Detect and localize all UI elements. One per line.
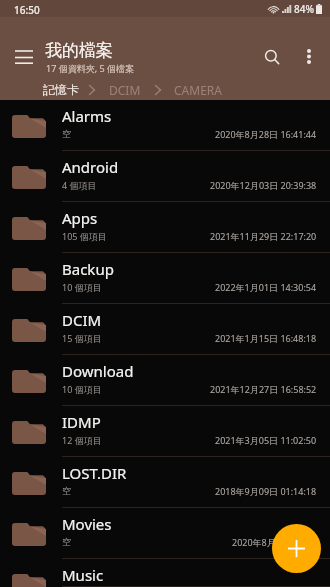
button[interactable]: Download bbox=[0, 355, 330, 406]
staticText: 4 個項目 bbox=[62, 179, 97, 191]
staticText: Music bbox=[62, 565, 104, 585]
button[interactable]: 記憶卡 bbox=[43, 82, 79, 97]
staticText: 記憶卡 bbox=[43, 82, 79, 97]
staticText: 84% bbox=[294, 2, 314, 16]
button[interactable]: Backup bbox=[0, 253, 330, 304]
staticText: Apps bbox=[62, 208, 98, 228]
staticText: 2021年12月27日 16:58:52 bbox=[210, 383, 317, 395]
staticText: 空 bbox=[62, 128, 71, 139]
button[interactable]: Movies bbox=[0, 508, 330, 559]
button[interactable]: IDMP bbox=[0, 406, 330, 457]
staticText: 2020年8月28日 16:41:44 bbox=[215, 128, 317, 140]
button[interactable]: Alarms bbox=[0, 100, 330, 151]
button[interactable]: Menu bbox=[6, 39, 42, 75]
staticText: LOST.DIR bbox=[62, 463, 127, 483]
staticText: 15 個項目 bbox=[62, 332, 102, 344]
staticText: Backup bbox=[62, 259, 114, 279]
staticText: 12 個項目 bbox=[62, 434, 102, 446]
staticText: 2020年12月03日 20:39:38 bbox=[210, 179, 317, 191]
staticText: 10 個項目 bbox=[62, 383, 102, 395]
button[interactable]: DCIM bbox=[109, 82, 141, 98]
staticText: 17 個資料夾, 5 個檔案 bbox=[46, 62, 134, 74]
staticText: 2020年8月28日 ..:..:.. bbox=[232, 536, 317, 548]
button[interactable]: More options bbox=[292, 39, 326, 73]
staticText: IDMP bbox=[62, 412, 101, 432]
button[interactable]: Android bbox=[0, 151, 330, 202]
staticText: 2021年3月05日 11:02:50 bbox=[215, 434, 317, 446]
staticText: 2021年11月29日 22:17:20 bbox=[210, 230, 317, 242]
button[interactable]: Music bbox=[0, 559, 330, 587]
staticText: 2022年1月01日 14:30:54 bbox=[215, 281, 317, 293]
button[interactable]: CAMERA bbox=[174, 82, 222, 98]
staticText: 我的檔案 bbox=[45, 40, 113, 61]
staticText: 105 個項目 bbox=[62, 230, 107, 242]
button[interactable]: LOST.DIR bbox=[0, 457, 330, 508]
button[interactable]: DCIM bbox=[0, 304, 330, 355]
staticText: 2018年9月09日 01:14:18 bbox=[215, 485, 317, 497]
staticText: Download bbox=[62, 361, 134, 381]
staticText: 10 個項目 bbox=[62, 281, 102, 293]
staticText: Movies bbox=[62, 514, 112, 534]
staticText: 空 bbox=[62, 485, 71, 496]
button[interactable]: Add bbox=[272, 524, 321, 573]
staticText: Android bbox=[62, 157, 119, 177]
staticText: Alarms bbox=[62, 106, 112, 126]
button[interactable]: Search bbox=[254, 39, 290, 75]
staticText: 空 bbox=[62, 536, 71, 547]
staticText: CAMERA bbox=[174, 82, 222, 98]
staticText: DCIM bbox=[109, 82, 141, 98]
button[interactable]: Apps bbox=[0, 202, 330, 253]
staticText: DCIM bbox=[62, 310, 102, 330]
staticText: 2021年1月15日 16:48:18 bbox=[215, 332, 317, 344]
staticText: 16:50 bbox=[14, 3, 40, 17]
